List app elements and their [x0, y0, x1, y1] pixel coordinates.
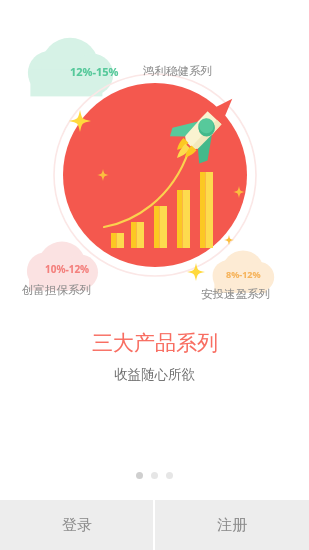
staticText: 10%-12%: [45, 262, 90, 276]
staticText: 安投速盈系列: [201, 287, 270, 301]
staticText: 登录: [62, 516, 92, 535]
staticText: 8%-12%: [226, 268, 261, 280]
staticText: 收益随心所欲: [114, 366, 195, 383]
staticText: 注册: [217, 516, 247, 535]
staticText: 创富担保系列: [22, 283, 91, 297]
button[interactable]: 登录: [0, 500, 153, 550]
button[interactable]: 注册: [155, 500, 309, 550]
staticText: 鸿利稳健系列: [143, 64, 212, 78]
staticText: 三大产品系列: [92, 330, 218, 356]
staticText: 12%-15%: [70, 64, 119, 79]
